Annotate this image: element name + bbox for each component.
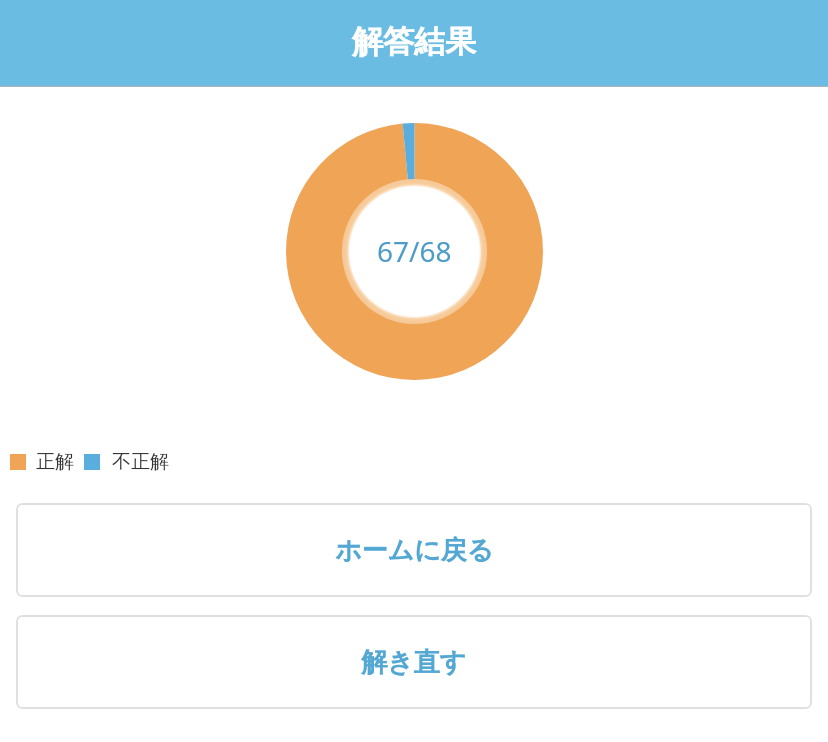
staticText: ホームに戻る bbox=[335, 534, 494, 567]
staticText: 解答結果 bbox=[352, 22, 476, 61]
staticText: 不正解 bbox=[112, 450, 169, 474]
staticText: 解き直す bbox=[361, 646, 467, 679]
staticText: 正解 bbox=[36, 450, 74, 474]
button[interactable]: 解き直す bbox=[16, 615, 812, 709]
button[interactable]: ホームに戻る bbox=[16, 503, 812, 597]
staticText: 67/68 bbox=[377, 232, 452, 270]
other: Score chart 67 of 68 correct bbox=[286, 123, 543, 380]
